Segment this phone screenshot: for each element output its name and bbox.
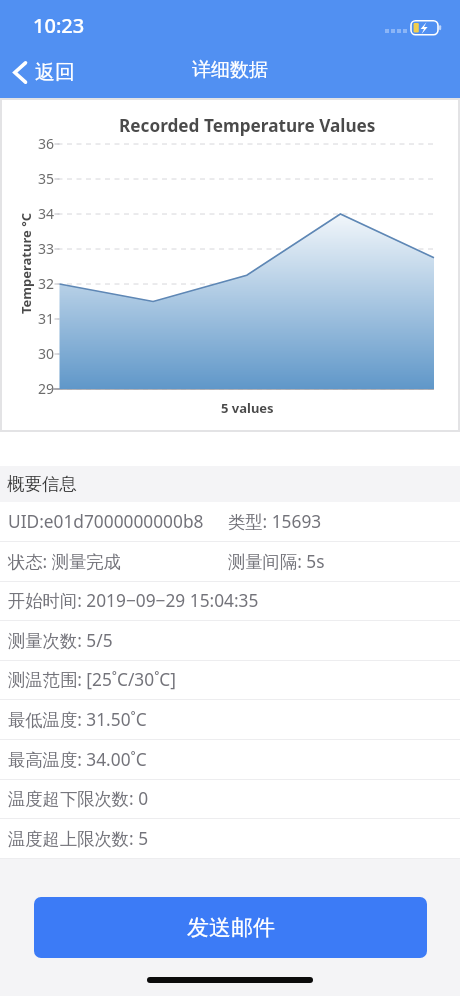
- button[interactable]: 温度超上限次数: 5: [0, 819, 460, 859]
- staticText: UID:e01d7000000000b8: [8, 510, 204, 534]
- button[interactable]: 测温范围: [25˚C/30˚C]: [0, 660, 460, 700]
- staticText: 返回: [35, 60, 75, 85]
- button[interactable]: 发送邮件: [34, 897, 427, 958]
- staticText: 测温范围: [25˚C/30˚C]: [8, 668, 176, 692]
- staticText: 状态: 测量完成: [8, 550, 121, 574]
- staticText: 最高温度: 34.00˚C: [8, 748, 147, 772]
- staticText: Temperature °C: [17, 213, 35, 314]
- staticText: 温度超下限次数: 0: [8, 787, 149, 811]
- staticText: 发送邮件: [187, 914, 275, 942]
- staticText: 29: [38, 379, 55, 398]
- staticText: 开始时间: 2019−09−29 15:04:35: [8, 589, 259, 613]
- button[interactable]: 温度超下限次数: 0: [0, 779, 460, 819]
- staticText: 32: [38, 274, 55, 293]
- staticText: Recorded Temperature Values: [119, 114, 376, 137]
- staticText: 概要信息: [7, 473, 77, 495]
- staticText: 测量间隔: 5s: [228, 550, 325, 574]
- staticText: 5 values: [221, 399, 274, 417]
- staticText: 34: [38, 204, 55, 223]
- button[interactable]: UID:e01d7000000000b8: [0, 502, 460, 542]
- button[interactable]: 返回: [0, 46, 91, 99]
- staticText: 温度超上限次数: 5: [8, 827, 149, 851]
- staticText: 33: [38, 239, 55, 258]
- staticText: 31: [38, 309, 55, 328]
- staticText: 最低温度: 31.50˚C: [8, 708, 147, 732]
- button[interactable]: 开始时间: 2019−09−29 15:04:35: [0, 581, 460, 621]
- staticText: 类型: 15693: [228, 510, 322, 534]
- staticText: 36: [38, 134, 55, 153]
- staticText: 30: [38, 344, 55, 363]
- staticText: 详细数据: [192, 58, 268, 82]
- staticText: 测量次数: 5/5: [8, 629, 113, 653]
- button[interactable]: 最低温度: 31.50˚C: [0, 700, 460, 740]
- button[interactable]: 最高温度: 34.00˚C: [0, 740, 460, 780]
- button[interactable]: 测量次数: 5/5: [0, 621, 460, 661]
- staticText: 35: [38, 169, 55, 188]
- staticText: 10:23: [33, 12, 85, 39]
- button[interactable]: 状态: 测量完成: [0, 542, 460, 582]
